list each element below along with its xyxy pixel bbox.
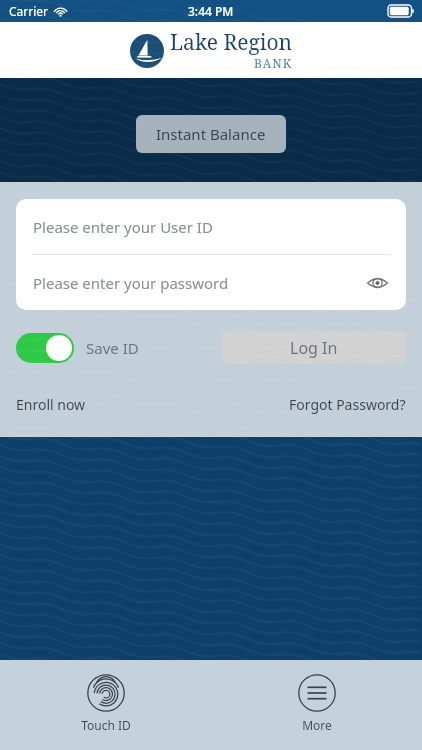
button[interactable]: Please enter your User ID [16,199,406,254]
button[interactable]: Forgot Password? [289,391,406,418]
staticText: More [302,717,332,733]
button[interactable]: Log In [222,331,406,364]
staticText: BANK [254,55,293,71]
button[interactable]: Save ID [16,333,139,363]
staticText: Lake Region [170,28,293,57]
staticText: Please enter your User ID [33,217,213,237]
staticText: 3:44 PM [188,3,234,19]
staticText: Touch ID [81,717,131,733]
staticText: Enroll now [16,395,86,414]
button[interactable]: Touch ID [67,672,145,735]
staticText: Instant Balance [156,124,266,144]
button[interactable]: More [284,672,350,735]
button[interactable]: Enroll now [16,391,86,418]
staticText: Carrier [9,3,49,19]
button[interactable]: Instant Balance [136,115,286,153]
button[interactable]: Show password [360,266,394,300]
button[interactable]: Please enter your password [16,255,406,310]
staticText: Log In [290,337,338,359]
staticText: Forgot Password? [289,395,406,414]
staticText: Save ID [86,338,139,358]
staticText: Please enter your password [33,273,229,293]
